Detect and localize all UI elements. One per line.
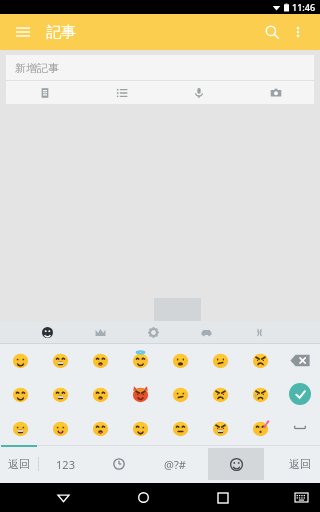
button[interactable]: Recent (91, 445, 147, 483)
button[interactable]: Back (46, 483, 80, 512)
button[interactable]: Emoji (0, 377, 40, 411)
button[interactable]: Smileys (36, 321, 58, 344)
staticText: 記事 (46, 23, 76, 42)
button[interactable]: More options (286, 20, 310, 44)
button[interactable]: 返回 (280, 445, 320, 483)
button[interactable]: Emoji keyboard (208, 448, 264, 480)
button[interactable]: Animals and nature (89, 321, 111, 344)
button[interactable]: New photo note (237, 81, 314, 104)
button[interactable]: Return (280, 411, 320, 445)
button[interactable]: Emoji (160, 411, 200, 445)
button[interactable]: Emoji (240, 377, 280, 411)
button[interactable]: Emoji (40, 377, 80, 411)
button[interactable]: Emoji (120, 411, 160, 445)
button[interactable]: Emoji (120, 377, 160, 411)
button[interactable]: Objects (142, 321, 164, 344)
button[interactable]: Confirm (280, 377, 320, 411)
button[interactable]: Emoji (80, 411, 120, 445)
button[interactable]: 返回 (0, 445, 38, 483)
button[interactable]: Emoji (40, 344, 80, 377)
button[interactable]: 新增記事 (6, 55, 314, 80)
button[interactable]: Navigation menu (10, 19, 36, 45)
staticText: 返回 (289, 457, 311, 471)
button[interactable]: New list (83, 81, 160, 104)
button[interactable]: Home (126, 483, 160, 512)
button[interactable]: Recent apps (206, 483, 240, 512)
button[interactable]: New voice note (160, 81, 237, 104)
button[interactable]: Emoji (200, 377, 240, 411)
button[interactable]: Emoji (80, 344, 120, 377)
button[interactable]: 123 (39, 445, 91, 483)
button[interactable]: Emoticons (248, 321, 270, 344)
staticText: 返回 (8, 457, 30, 471)
button[interactable]: Emoji (80, 377, 120, 411)
button[interactable]: Switch keyboard (286, 483, 316, 512)
button[interactable]: Emoji (120, 344, 160, 377)
button[interactable]: Travel and places (195, 321, 217, 344)
button[interactable]: New text note (6, 81, 83, 104)
staticText: 新增記事 (15, 61, 59, 75)
staticText: 123 (56, 457, 75, 472)
button[interactable]: Emoji (40, 411, 80, 445)
button[interactable]: Emoji (0, 344, 40, 377)
staticText: @?# (164, 457, 186, 472)
button[interactable]: Emoji (160, 344, 200, 377)
staticText: 11:46 (292, 1, 316, 13)
button[interactable]: Emoji (240, 344, 280, 377)
button[interactable]: Emoji (0, 411, 40, 445)
button[interactable]: Emoji (160, 377, 200, 411)
button[interactable]: Emoji (240, 411, 280, 445)
button[interactable]: @?# (147, 445, 203, 483)
button[interactable]: Backspace (280, 344, 320, 377)
button[interactable]: Emoji (200, 344, 240, 377)
button[interactable]: Search (258, 18, 286, 46)
button[interactable]: Emoji (200, 411, 240, 445)
